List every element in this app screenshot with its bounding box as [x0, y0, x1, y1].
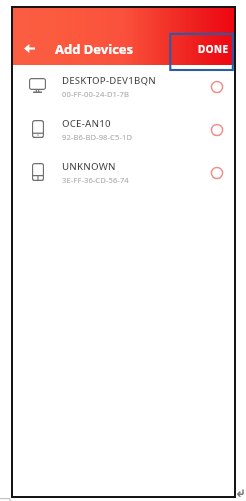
- button[interactable]: OCE-AN10: [13, 108, 234, 151]
- button[interactable]: UNKNOWN: [13, 151, 234, 194]
- button[interactable]: DESKTOP-DEV1BQN: [13, 65, 234, 108]
- button[interactable]: DONE: [170, 33, 234, 65]
- staticText: Add Devices: [55, 40, 134, 58]
- staticText: 92-B6-BD-98-C5-1D: [62, 132, 133, 142]
- button[interactable]: Back: [13, 33, 48, 65]
- staticText: DESKTOP-DEV1BQN: [62, 74, 156, 87]
- staticText: 00-FF-00-24-D1-7B: [62, 89, 130, 99]
- staticText: OCE-AN10: [62, 117, 111, 130]
- staticText: DONE: [198, 43, 229, 56]
- staticText: 3E-FF-36-CD-56-74: [62, 175, 129, 185]
- button[interactable]: DONE: [169, 33, 234, 71]
- staticText: UNKNOWN: [62, 160, 116, 173]
